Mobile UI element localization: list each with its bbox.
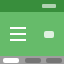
button[interactable]: Tab 2 <box>22 56 43 64</box>
button[interactable]: Tab 3 <box>43 56 64 64</box>
button[interactable]: Tab 1 <box>0 56 22 64</box>
button[interactable]: Navigation menu <box>10 22 34 46</box>
